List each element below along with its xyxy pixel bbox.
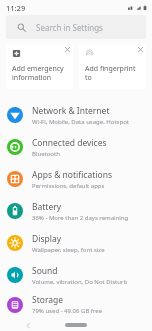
button[interactable]: Dismiss suggestion — [135, 44, 146, 55]
staticText: Add emergency information — [12, 64, 64, 82]
staticText: Search in Settings — [36, 22, 103, 33]
staticText: Volume, vibration, Do Not Disturb — [32, 278, 128, 286]
staticText: Bluetooth — [32, 150, 60, 158]
button[interactable]: Storage — [0, 291, 152, 318]
staticText: Add fingerprint to unlock — [85, 64, 143, 82]
button[interactable]: Search in Settings — [6, 15, 146, 39]
button[interactable]: Home — [63, 320, 89, 330]
button[interactable]: Sound — [0, 259, 152, 291]
staticText: Connected devices — [32, 137, 107, 149]
button[interactable]: Connected devices — [0, 131, 152, 163]
staticText: 79% used - 49.06 GB free — [32, 307, 103, 315]
staticText: Display — [32, 233, 61, 245]
staticText: Network & Internet — [32, 105, 110, 117]
staticText: 11:29 — [6, 3, 26, 13]
staticText: Apps & notifications — [32, 169, 112, 181]
button[interactable]: Back — [22, 319, 34, 331]
staticText: Wi-Fi, Mobile, Data usage, Hotspot — [32, 118, 129, 126]
staticText: Battery — [32, 201, 62, 213]
button[interactable]: Add fingerprint to unlock — [79, 44, 146, 89]
button[interactable]: Network & Internet — [0, 99, 152, 131]
button[interactable]: Display — [0, 227, 152, 259]
staticText: Sound — [32, 265, 58, 277]
staticText: Storage — [32, 294, 64, 306]
button[interactable]: Add emergency information — [6, 44, 73, 89]
staticText: Wallpaper, sleep, font size — [32, 246, 105, 254]
button[interactable]: Dismiss suggestion — [62, 44, 73, 55]
button[interactable]: Apps & notifications — [0, 163, 152, 195]
staticText: Permissions, default apps — [32, 182, 105, 190]
button[interactable]: Battery — [0, 195, 152, 227]
staticText: 36% - More than 2 days remaining — [32, 214, 129, 222]
